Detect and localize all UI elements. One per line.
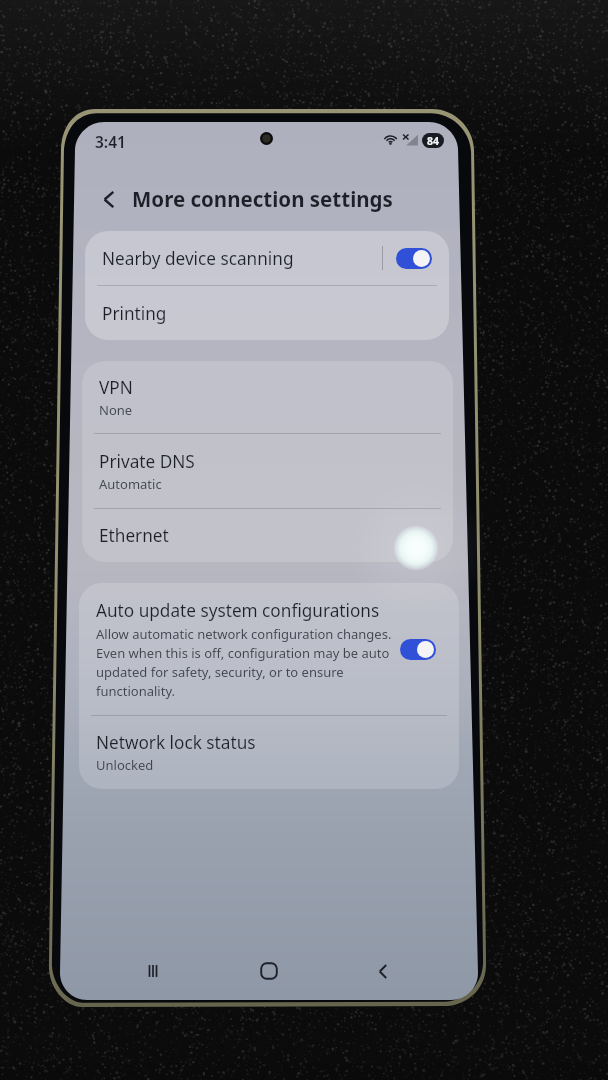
staticText: Private DNS: [99, 450, 195, 473]
button[interactable]: Private DNS: [82, 434, 453, 508]
button[interactable]: Printing: [85, 286, 449, 340]
button[interactable]: Ethernet: [82, 509, 453, 562]
staticText: None: [99, 401, 133, 419]
button[interactable]: Auto update system configurations: [79, 583, 459, 715]
button[interactable]: VPN: [82, 361, 453, 433]
button[interactable]: Navigate up: [92, 182, 126, 216]
staticText: 84: [427, 134, 440, 148]
button[interactable]: Nearby device scanning: [85, 231, 449, 285]
staticText: Printing: [102, 302, 167, 325]
button[interactable]: Network lock status: [79, 716, 459, 789]
staticText: Unlocked: [96, 756, 154, 774]
staticText: VPN: [99, 376, 133, 399]
button[interactable]: Auto update system configurations toggle: [400, 639, 436, 660]
button[interactable]: Home: [211, 945, 326, 997]
staticText: Auto update system configurations: [96, 599, 380, 622]
button[interactable]: Recent apps: [95, 945, 211, 997]
button[interactable]: Back: [326, 945, 441, 997]
button[interactable]: Nearby device scanning toggle: [396, 248, 432, 269]
staticText: Ethernet: [99, 524, 169, 547]
staticText: Automatic: [99, 475, 162, 493]
staticText: Allow automatic network configuration ch…: [96, 625, 392, 700]
staticText: More connection settings: [132, 185, 393, 213]
staticText: 3:41: [95, 131, 126, 152]
staticText: Nearby device scanning: [102, 247, 382, 270]
staticText: Network lock status: [96, 731, 256, 754]
